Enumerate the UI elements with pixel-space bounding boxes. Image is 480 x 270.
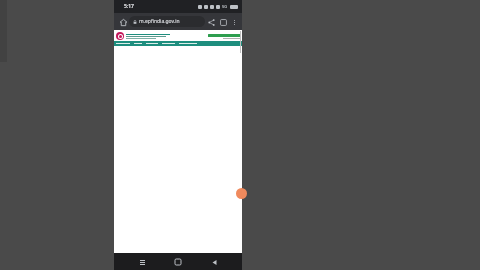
button[interactable]: m.epfindia.gov.in [129,16,205,27]
staticText: 5:17 [124,3,134,10]
button[interactable]: Back [206,254,222,270]
button[interactable]: Tabs [217,16,229,28]
staticText: m.epfindia.gov.in [139,18,180,25]
button[interactable]: More options [229,17,239,27]
button[interactable] [208,34,241,37]
button[interactable]: Recent apps [134,254,150,270]
staticText: 5G [222,4,228,9]
button[interactable]: Home [117,16,129,28]
button[interactable]: Chat support [236,188,247,199]
button[interactable]: Share [205,16,217,28]
button[interactable]: Home [170,254,186,270]
button[interactable]: EPFO logo [116,32,124,40]
